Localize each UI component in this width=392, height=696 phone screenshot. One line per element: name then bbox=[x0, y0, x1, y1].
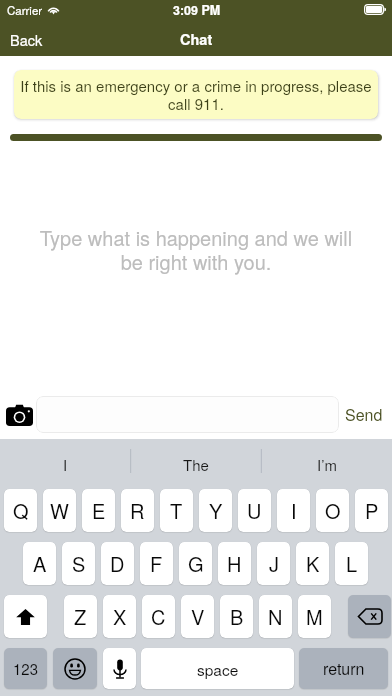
button[interactable]: W bbox=[43, 489, 76, 532]
staticText: D bbox=[110, 549, 125, 578]
button[interactable]: F bbox=[140, 542, 173, 585]
button[interactable]: R bbox=[121, 489, 154, 532]
staticText: X bbox=[113, 602, 127, 631]
button[interactable]: Z bbox=[64, 595, 97, 638]
staticText: B bbox=[230, 602, 244, 631]
button[interactable]: O bbox=[316, 489, 349, 532]
button[interactable]: Back bbox=[0, 22, 55, 56]
staticText: A bbox=[33, 549, 47, 578]
button[interactable]: C bbox=[142, 595, 175, 638]
staticText: 3:09 PM bbox=[173, 1, 221, 19]
staticText: Back bbox=[10, 29, 43, 49]
button[interactable]: G bbox=[179, 542, 212, 585]
button[interactable]: N bbox=[259, 595, 292, 638]
staticText: Carrier bbox=[7, 2, 43, 18]
staticText: G bbox=[188, 549, 204, 578]
button[interactable]: M bbox=[298, 595, 331, 638]
button[interactable]: Dictate bbox=[103, 648, 136, 689]
button[interactable]: S bbox=[62, 542, 95, 585]
button[interactable]: space bbox=[141, 648, 294, 689]
button[interactable]: I bbox=[0, 439, 130, 489]
staticText: I bbox=[63, 454, 68, 475]
button[interactable]: T bbox=[160, 489, 193, 532]
staticText: U bbox=[247, 496, 262, 525]
staticText: Y bbox=[209, 496, 223, 525]
button[interactable]: H bbox=[218, 542, 251, 585]
staticText: H bbox=[227, 549, 242, 578]
button[interactable]: Y bbox=[199, 489, 232, 532]
staticText: V bbox=[191, 602, 205, 631]
button[interactable]: Camera bbox=[1, 397, 37, 433]
button[interactable]: J bbox=[257, 542, 290, 585]
staticText: P bbox=[365, 496, 379, 525]
staticText: E bbox=[92, 496, 106, 525]
staticText: space bbox=[197, 658, 239, 680]
staticText: If this is an emergency or a crime in pr… bbox=[19, 75, 373, 115]
staticText: Chat bbox=[180, 29, 213, 50]
staticText: 123 bbox=[13, 658, 39, 679]
button[interactable]: V bbox=[181, 595, 214, 638]
staticText: K bbox=[306, 549, 320, 578]
staticText: Send bbox=[345, 403, 383, 426]
button[interactable]: L bbox=[335, 542, 368, 585]
button[interactable]: U bbox=[238, 489, 271, 532]
staticText: C bbox=[151, 602, 166, 631]
button[interactable]: The bbox=[130, 439, 261, 489]
staticText: T bbox=[170, 496, 183, 525]
button[interactable]: Emoji bbox=[53, 648, 97, 689]
button[interactable]: If this is an emergency or a crime in pr… bbox=[14, 70, 378, 119]
button[interactable]: P bbox=[355, 489, 388, 532]
button[interactable] bbox=[36, 396, 339, 433]
button[interactable]: Shift bbox=[4, 595, 47, 638]
button[interactable]: Backspace bbox=[348, 595, 391, 638]
button[interactable]: return bbox=[299, 648, 388, 689]
button[interactable]: E bbox=[82, 489, 115, 532]
staticText: The bbox=[183, 454, 209, 475]
staticText: return bbox=[323, 657, 365, 680]
staticText: L bbox=[346, 549, 358, 578]
staticText: N bbox=[268, 602, 283, 631]
button[interactable]: X bbox=[103, 595, 136, 638]
staticText: I’m bbox=[317, 454, 337, 475]
button[interactable]: B bbox=[220, 595, 253, 638]
button[interactable]: I bbox=[277, 489, 310, 532]
staticText: S bbox=[72, 549, 86, 578]
staticText: Type what is happening and we will be ri… bbox=[30, 223, 362, 276]
staticText: I bbox=[291, 496, 297, 525]
staticText: Z bbox=[74, 602, 87, 631]
button[interactable]: Send bbox=[336, 395, 392, 434]
button[interactable]: K bbox=[296, 542, 329, 585]
button[interactable]: Q bbox=[4, 489, 37, 532]
staticText: Q bbox=[13, 496, 29, 525]
button[interactable]: 123 bbox=[4, 648, 47, 689]
button[interactable]: I’m bbox=[261, 439, 392, 489]
button[interactable]: A bbox=[23, 542, 56, 585]
staticText: F bbox=[150, 549, 163, 578]
staticText: O bbox=[325, 496, 341, 525]
staticText: R bbox=[130, 496, 145, 525]
staticText: M bbox=[306, 602, 323, 631]
staticText: W bbox=[50, 496, 69, 525]
staticText: J bbox=[269, 549, 279, 578]
button[interactable]: D bbox=[101, 542, 134, 585]
